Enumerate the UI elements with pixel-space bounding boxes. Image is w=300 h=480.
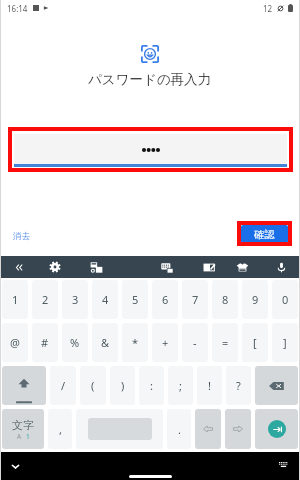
button[interactable]: Move left [195, 409, 221, 449]
staticText: 5 [132, 292, 139, 307]
button[interactable]: 6 [152, 280, 178, 319]
button[interactable]: 1 [2, 280, 28, 319]
staticText: 6 [162, 292, 169, 307]
button[interactable]: @ [2, 323, 28, 362]
button[interactable]: ? [226, 366, 251, 405]
staticText: A [17, 432, 22, 441]
button[interactable]: ) [110, 366, 135, 405]
button[interactable]: % [62, 323, 88, 362]
button[interactable]: 0 [272, 280, 298, 319]
staticText: % [70, 335, 80, 350]
button[interactable]: 消去 [8, 227, 35, 246]
button[interactable]: . [167, 409, 191, 449]
staticText: [ [253, 335, 257, 350]
staticText: * [132, 335, 139, 350]
staticText: 1 [12, 292, 19, 307]
button[interactable]: 2 [32, 280, 58, 319]
staticText: 3 [72, 292, 79, 307]
button[interactable]: Switch input mode [2, 409, 44, 449]
button[interactable]: Clipboard [85, 256, 107, 278]
button[interactable]: Voice input [270, 256, 292, 278]
staticText: 8 [222, 292, 229, 307]
button[interactable]: Backspace [255, 366, 298, 405]
staticText: 7 [192, 292, 199, 307]
staticText: / [61, 378, 66, 393]
staticText: # [41, 335, 49, 350]
button[interactable]: 7 [182, 280, 208, 319]
staticText: ? [236, 378, 241, 393]
button[interactable]: 4 [92, 280, 118, 319]
staticText: 4 [102, 292, 109, 307]
button[interactable]: Back [8, 256, 30, 278]
button[interactable]: - [182, 323, 208, 362]
button[interactable]: + [152, 323, 178, 362]
staticText: & [101, 335, 110, 350]
button[interactable]: Move right [225, 409, 251, 449]
staticText: ] [283, 335, 287, 350]
staticText: 2 [42, 292, 49, 307]
button[interactable]: Notes [198, 256, 220, 278]
staticText: 1 [26, 432, 30, 441]
button[interactable]: ! [197, 366, 222, 405]
button[interactable] [14, 134, 287, 167]
button[interactable]: Settings [44, 256, 66, 278]
button[interactable]: = [212, 323, 238, 362]
button[interactable]: & [92, 323, 118, 362]
button[interactable]: 9 [242, 280, 268, 319]
button[interactable]: Enter [255, 409, 298, 449]
staticText: 16:14 [7, 3, 28, 14]
staticText: + [162, 335, 169, 350]
button[interactable]: Keyboard layouts [156, 256, 178, 278]
button[interactable]: ] [272, 323, 298, 362]
staticText: ! [208, 378, 211, 393]
button[interactable]: Shift [2, 366, 46, 405]
staticText: , [59, 422, 62, 437]
staticText: 12 [263, 3, 273, 14]
button[interactable]: [ [242, 323, 268, 362]
button[interactable]: ( [80, 366, 106, 405]
staticText: . [178, 422, 181, 437]
staticText: @ [10, 335, 20, 350]
button[interactable]: / [50, 366, 76, 405]
button[interactable]: ; [168, 366, 193, 405]
staticText: 9 [252, 292, 259, 307]
staticText: ; [179, 378, 182, 393]
button[interactable]: 3 [62, 280, 88, 319]
button[interactable]: 5 [122, 280, 148, 319]
button[interactable]: , [48, 409, 72, 449]
button[interactable]: 8 [212, 280, 238, 319]
staticText: 消去 [13, 231, 30, 242]
button[interactable]: Themes [231, 256, 253, 278]
staticText: = [222, 335, 229, 350]
staticText: : [150, 378, 153, 393]
button[interactable]: Switch keyboard [275, 456, 292, 473]
button[interactable]: Space [76, 409, 163, 449]
staticText: 文字 [12, 418, 34, 432]
button[interactable]: : [139, 366, 164, 405]
staticText: 確認 [254, 228, 276, 241]
button[interactable]: # [32, 323, 58, 362]
staticText: ( [91, 378, 95, 393]
staticText: ) [121, 378, 125, 393]
button[interactable]: Hide keyboard [7, 458, 24, 475]
button[interactable]: 確認 [241, 225, 288, 243]
staticText: パスワードの再入力 [88, 71, 212, 88]
button[interactable]: * [122, 323, 148, 362]
staticText: - [193, 335, 197, 350]
staticText: 0 [282, 292, 289, 307]
